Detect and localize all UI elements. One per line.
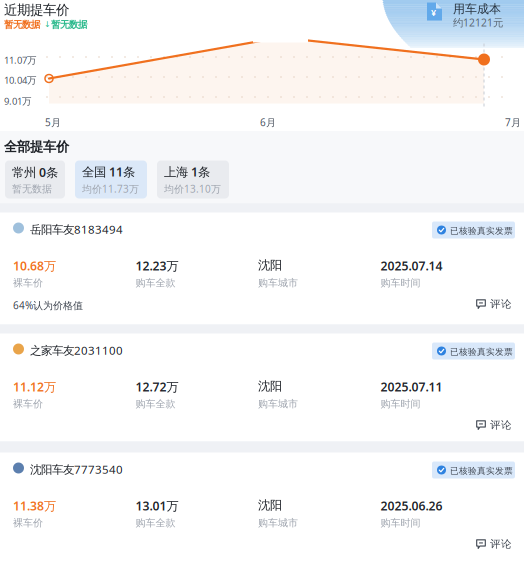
staticText: 约12121元 xyxy=(453,15,503,29)
button[interactable]: 全国 11条 xyxy=(75,160,147,198)
staticText: 全部提车价 xyxy=(4,138,69,155)
button[interactable]: 评论 xyxy=(476,537,512,551)
staticText: 裸车价 xyxy=(13,516,43,529)
staticText: 2025.06.26 xyxy=(380,497,442,514)
staticText: 12.23万 xyxy=(135,257,178,274)
button[interactable]: 评论 xyxy=(476,297,512,311)
staticText: 评论 xyxy=(490,537,512,551)
staticText: 近期提车价 xyxy=(4,1,69,18)
staticText: 11.07万 xyxy=(4,53,36,66)
staticText: 购车全款 xyxy=(135,516,175,529)
staticText: 购车时间 xyxy=(380,276,420,289)
staticText: 13.01万 xyxy=(135,497,178,514)
staticText: ↓ xyxy=(44,19,51,29)
staticText: 沈阳 xyxy=(258,378,282,394)
staticText: 10.04万 xyxy=(4,73,36,86)
staticText: 暂无数据 xyxy=(51,18,87,30)
staticText: 评论 xyxy=(490,297,512,311)
staticText: 沈阳 xyxy=(258,497,282,513)
staticText: 均价11.73万 xyxy=(82,182,139,196)
button[interactable]: 常州 0条 xyxy=(5,160,65,198)
button[interactable]: 上海 1条 xyxy=(157,160,229,198)
staticText: 均价13.10万 xyxy=(164,182,221,196)
staticText: 评论 xyxy=(490,418,512,432)
staticText: 10.68万 xyxy=(13,257,56,274)
button[interactable]: 已核验真实发票 xyxy=(432,342,515,359)
staticText: 购车时间 xyxy=(380,397,420,410)
staticText: 之家车友2031100 xyxy=(30,342,123,358)
staticText: 11.38万 xyxy=(13,497,56,514)
button[interactable]: 已核验真实发票 xyxy=(432,221,515,238)
staticText: 购车全款 xyxy=(135,276,175,289)
staticText: 购车城市 xyxy=(258,516,298,529)
staticText: 购车时间 xyxy=(380,516,420,529)
staticText: 2025.07.14 xyxy=(380,257,442,274)
staticText: 沈阳车友7773540 xyxy=(30,461,123,477)
staticText: 购车城市 xyxy=(258,397,298,410)
staticText: 全国 11条 xyxy=(82,163,135,180)
staticText: 暂无数据 xyxy=(12,183,52,195)
button[interactable]: 已核验真实发票 xyxy=(432,461,515,478)
staticText: 购车全款 xyxy=(135,397,175,410)
staticText: 已核验真实发票 xyxy=(450,346,513,357)
staticText: 2025.07.11 xyxy=(380,378,442,395)
staticText: 用车成本 xyxy=(453,1,501,17)
staticText: 常州 0条 xyxy=(12,164,58,181)
staticText: 12.72万 xyxy=(135,378,178,395)
staticText: 购车城市 xyxy=(258,276,298,289)
staticText: 7月 xyxy=(505,115,521,129)
staticText: 岳阳车友8183494 xyxy=(30,221,123,237)
staticText: 裸车价 xyxy=(13,397,43,410)
staticText: 上海 1条 xyxy=(164,163,210,180)
button[interactable]: 评论 xyxy=(476,418,512,432)
staticText: 沈阳 xyxy=(258,257,282,273)
staticText: 11.12万 xyxy=(13,378,56,395)
staticText: ¥ xyxy=(431,6,436,19)
staticText: 5月 xyxy=(45,115,61,129)
staticText: 已核验真实发票 xyxy=(450,465,513,476)
staticText: 已核验真实发票 xyxy=(450,225,513,236)
staticText: 暂无数据 xyxy=(4,18,40,30)
staticText: 64%认为价格值 xyxy=(13,298,83,312)
staticText: 裸车价 xyxy=(13,276,43,289)
staticText: 9.01万 xyxy=(4,94,31,107)
staticText: 6月 xyxy=(260,115,276,129)
